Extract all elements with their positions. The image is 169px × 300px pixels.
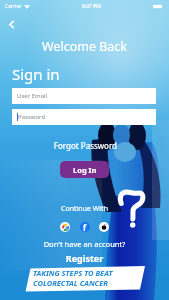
button[interactable]: Register xyxy=(0,252,169,264)
button[interactable]: Apple xyxy=(99,222,109,232)
staticText: COLORECTAL CANCER xyxy=(33,278,108,288)
staticText: Log In xyxy=(73,165,97,175)
button[interactable]: User Email xyxy=(12,88,156,104)
button[interactable]: Password xyxy=(12,109,156,125)
staticText: Don't have an account? xyxy=(0,239,169,249)
staticText: Carrier xyxy=(5,3,22,10)
staticText: 9:07 PM xyxy=(82,3,101,10)
button[interactable]: Forgot Password xyxy=(0,140,117,151)
staticText: Welcome Back xyxy=(0,38,169,55)
button[interactable]: Facebook xyxy=(80,222,90,232)
button[interactable]: Back xyxy=(3,16,19,32)
staticText: TAKING STEPS TO BEAT xyxy=(33,268,113,278)
staticText: Password xyxy=(18,113,46,121)
staticText: Continue With xyxy=(0,204,169,214)
button[interactable]: Google xyxy=(60,222,70,232)
staticText: Sign in xyxy=(12,64,60,84)
staticText: f xyxy=(83,222,87,232)
staticText: User Email xyxy=(17,92,48,100)
button[interactable]: Log In xyxy=(60,161,109,178)
